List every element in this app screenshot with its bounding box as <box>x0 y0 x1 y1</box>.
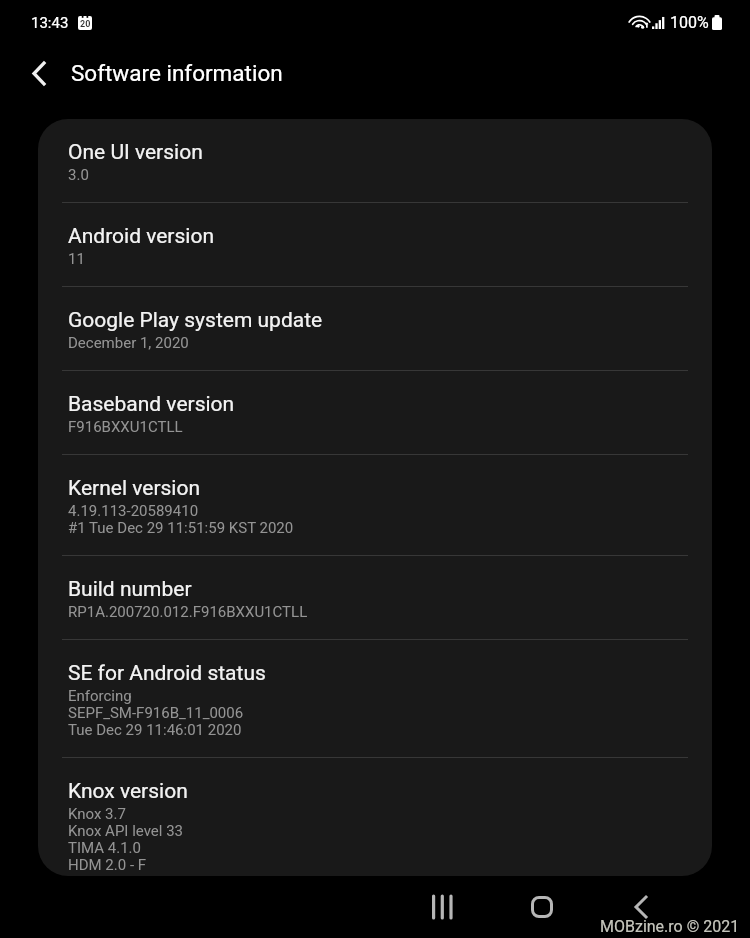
staticText: 13:43 <box>31 14 69 32</box>
staticText: SEPF_SM-F916B_11_0006 <box>68 705 244 722</box>
staticText: Enforcing <box>68 688 132 705</box>
staticText: MOBzine.ro © 2021 <box>600 917 740 936</box>
staticText: #1 Tue Dec 29 11:51:59 KST 2020 <box>68 520 294 537</box>
staticText: 20 <box>80 19 91 30</box>
staticText: RP1A.200720.012.F916BXXU1CTLL <box>68 604 308 621</box>
staticText: 3.0 <box>68 167 89 184</box>
staticText: Kernel version <box>68 475 201 500</box>
button[interactable]: Back <box>611 877 671 937</box>
staticText: Software information <box>71 60 283 86</box>
staticText: HDM 2.0 - F <box>68 857 147 874</box>
button[interactable]: Kernel version <box>38 455 712 556</box>
staticText: 11 <box>68 251 85 268</box>
button[interactable]: Back <box>19 53 59 93</box>
button[interactable]: Android version <box>38 203 712 287</box>
button[interactable]: SE for Android status <box>38 640 712 758</box>
staticText: F916BXXU1CTLL <box>68 419 183 436</box>
staticText: Baseband version <box>68 391 235 416</box>
button[interactable]: Home <box>512 877 572 937</box>
staticText: One UI version <box>68 139 203 164</box>
staticText: Google Play system update <box>68 307 323 332</box>
staticText: Android version <box>68 223 214 248</box>
staticText: Build number <box>68 576 192 601</box>
staticText: Knox API level 33 <box>68 823 183 840</box>
button[interactable]: One UI version <box>38 119 712 203</box>
staticText: Knox 3.7 <box>68 806 126 823</box>
staticText: Knox version <box>68 778 188 803</box>
staticText: SE for Android status <box>68 660 266 685</box>
staticText: Tue Dec 29 11:46:01 2020 <box>68 722 242 739</box>
button[interactable]: Google Play system update <box>38 287 712 371</box>
button[interactable]: Build number <box>38 556 712 640</box>
button[interactable]: Knox version <box>38 758 712 876</box>
staticText: 4.19.113-20589410 <box>68 503 199 520</box>
staticText: December 1, 2020 <box>68 335 189 352</box>
button[interactable]: Baseband version <box>38 371 712 455</box>
staticText: 100% <box>670 13 709 32</box>
staticText: TIMA 4.1.0 <box>68 840 141 857</box>
button[interactable]: Recent apps <box>412 877 472 937</box>
